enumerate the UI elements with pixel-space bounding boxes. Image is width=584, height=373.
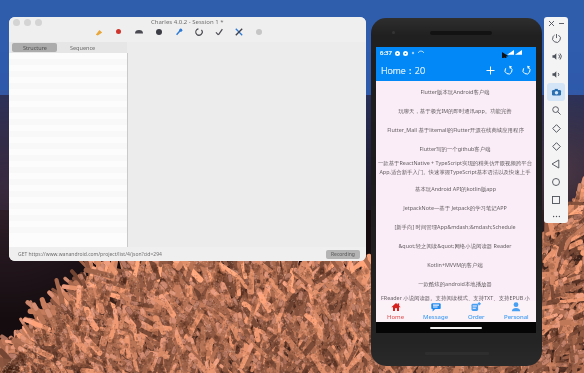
staticText: FReader 小说阅读器。支持阅读模式、支持TXT、支持EPUB 小	[381, 294, 530, 301]
button[interactable]: FReader 小说阅读器。支持阅读模式、支持TXT、支持EPUB 小	[376, 293, 536, 301]
button[interactable]: Power	[547, 29, 565, 47]
button[interactable]: Volume up	[547, 47, 565, 65]
button[interactable]: Refresh	[501, 63, 515, 77]
staticText: Message	[423, 313, 449, 321]
button[interactable]: Toolbar action	[213, 26, 224, 37]
button[interactable]: Back	[547, 155, 565, 173]
button[interactable]: Overview	[547, 191, 565, 209]
staticText: Kotlin+MVVM的客户端	[427, 261, 483, 268]
button[interactable]: Minimize	[557, 19, 565, 27]
button[interactable]: Flutter写的一个github客户端	[376, 139, 536, 158]
button[interactable]: Rotate left	[547, 119, 565, 137]
button[interactable]: Order	[456, 301, 496, 322]
staticText: Home：20	[381, 64, 426, 76]
button[interactable]: Restore	[519, 63, 533, 77]
button[interactable]: Toolbar action	[153, 26, 164, 37]
button[interactable]: Home	[547, 173, 565, 191]
button[interactable]: Close	[547, 19, 555, 27]
button[interactable]: Personal	[496, 301, 536, 322]
staticText: Recording	[331, 251, 355, 258]
button[interactable]: JetpackNote—基于 Jetpack的学习笔记APP	[376, 198, 536, 217]
staticText: 玩聊天，基于极光IM的即时通讯app。功能完善	[398, 107, 512, 114]
button[interactable]: [新手向] 时间管理App&mdash;&mdash;Schedule	[376, 217, 536, 236]
staticText: 一款酷炫的android本地播放器	[418, 280, 492, 287]
staticText: 一款基于ReactNative + TypeScript实现的精美仿开眼视频跨平…	[376, 159, 535, 179]
button[interactable]: Toolbar action	[113, 26, 124, 37]
button[interactable]: Toolbar action	[193, 26, 204, 37]
staticText: 基本玩Android API的kotlin版app	[415, 185, 496, 192]
button[interactable]: Zoom	[547, 101, 565, 119]
button[interactable]: Message	[416, 301, 456, 322]
staticText: Charles 4.0.2 - Session 1 *	[151, 18, 224, 26]
button[interactable]: 一款基于ReactNative + TypeScript实现的精美仿开眼视频跨平…	[376, 158, 536, 179]
staticText: Flutter_Mall 基于litemall的Flutter开源在线商城应用程…	[387, 126, 524, 133]
button[interactable]: 基本玩Android API的kotlin版app	[376, 179, 536, 198]
button[interactable]: Recording	[326, 250, 360, 259]
staticText: Home	[387, 313, 405, 321]
button[interactable]: Volume down	[547, 65, 565, 83]
staticText: 6:37	[380, 49, 392, 57]
button[interactable]: Sequence	[57, 42, 109, 53]
staticText: [新手向] 时间管理App&mdash;&mdash;Schedule	[394, 223, 516, 230]
staticText: JetpackNote—基于 Jetpack的学习笔记APP	[403, 204, 507, 211]
button[interactable]: Kotlin+MVVM的客户端	[376, 255, 536, 274]
button[interactable]: 玩聊天，基于极光IM的即时通讯app。功能完善	[376, 101, 536, 120]
staticText: Flutter版本玩Android客户端	[420, 88, 490, 95]
button[interactable]: Home	[376, 301, 416, 322]
button[interactable]: Flutter版本玩Android客户端	[376, 82, 536, 101]
staticText: Personal	[504, 313, 529, 321]
button[interactable]: Structure	[12, 43, 57, 52]
button[interactable]: Add	[483, 63, 497, 77]
button[interactable]: Toolbar action	[173, 26, 184, 37]
button[interactable]: Flutter_Mall 基于litemall的Flutter开源在线商城应用程…	[376, 120, 536, 139]
staticText: Flutter写的一个github客户端	[419, 145, 491, 152]
button[interactable]: &quot;轻之阅读&quot;网络小说阅读器 Reader	[376, 236, 536, 255]
button[interactable]: Toolbar action	[233, 26, 244, 37]
staticText: &quot;轻之阅读&quot;网络小说阅读器 Reader	[398, 242, 512, 249]
staticText: Order	[468, 313, 485, 321]
button[interactable]: Toolbar action	[253, 26, 264, 37]
button[interactable]: Toolbar action	[133, 26, 144, 37]
button[interactable]: Toolbar action	[93, 26, 104, 37]
button[interactable]: Rotate right	[547, 137, 565, 155]
button[interactable]: Screenshot	[547, 83, 565, 101]
staticText: Structure	[23, 44, 47, 51]
staticText: Sequence	[70, 44, 96, 51]
staticText: GET https://www.wanandroid.com/project/l…	[18, 251, 162, 258]
button[interactable]: 一款酷炫的android本地播放器	[376, 274, 536, 293]
button[interactable]: More	[547, 209, 565, 223]
